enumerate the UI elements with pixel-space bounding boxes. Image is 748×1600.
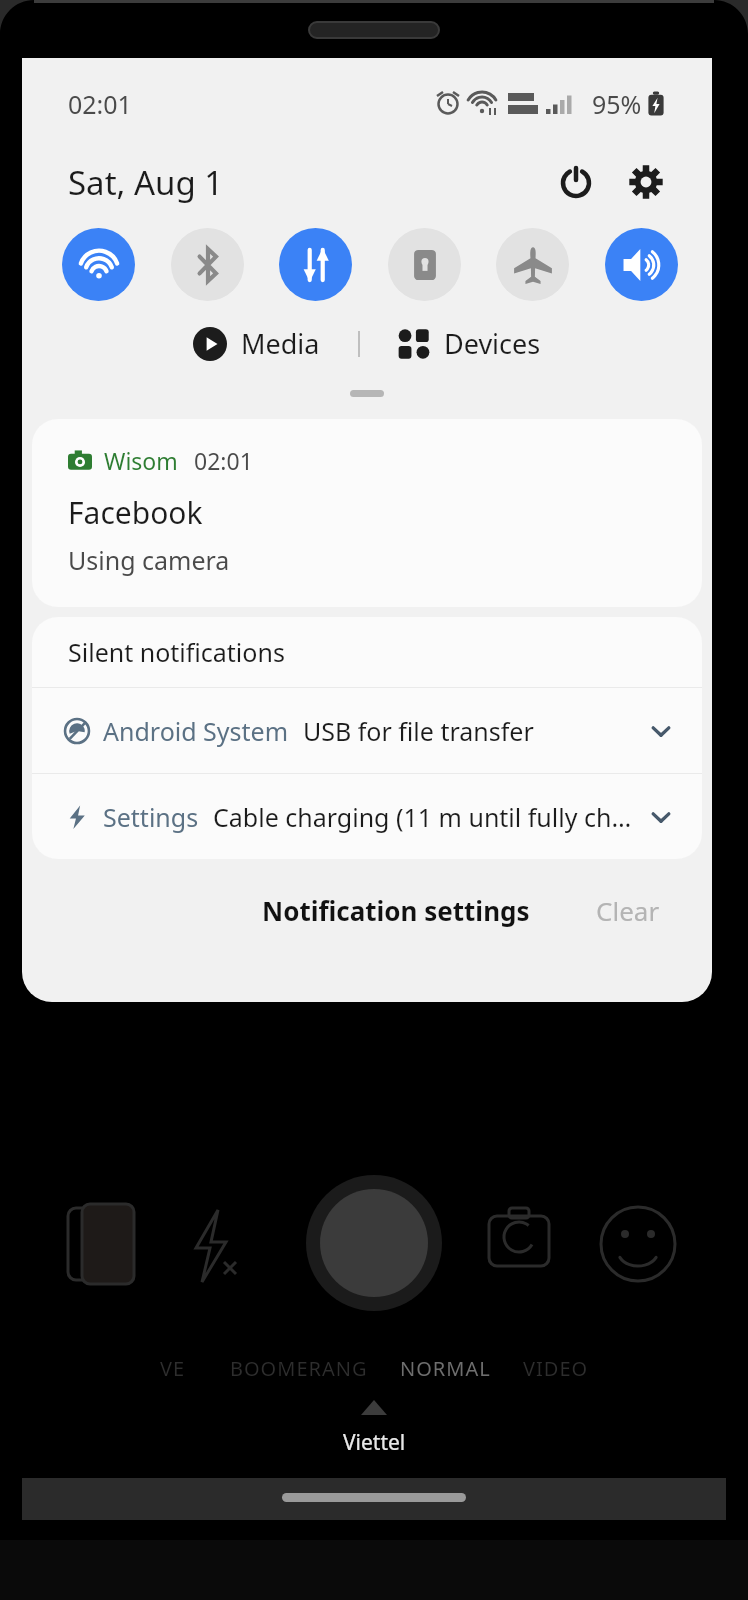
staticText: Using camera <box>68 543 230 577</box>
staticText: Viettel <box>343 1428 406 1457</box>
button[interactable]: BOOMERANG <box>228 1355 370 1382</box>
button[interactable]: SIM card lock <box>388 228 461 301</box>
button[interactable]: Android System <box>32 688 702 773</box>
staticText: Android System <box>103 714 289 748</box>
button[interactable]: Settings <box>32 774 702 859</box>
button[interactable]: Devices <box>388 319 551 368</box>
button[interactable]: VIDEO <box>521 1355 591 1382</box>
button[interactable]: VE <box>158 1355 188 1382</box>
staticText: 95% <box>592 87 642 121</box>
button[interactable]: Silent notifications <box>32 617 702 687</box>
staticText: Sat, Aug 1 <box>68 160 224 205</box>
staticText: BOOMERANG <box>230 1355 368 1382</box>
staticText: Devices <box>444 325 541 362</box>
staticText: 02:01 <box>68 87 132 121</box>
staticText: Facebook <box>68 492 203 533</box>
staticText: NORMAL <box>400 1355 491 1382</box>
button[interactable]: Media <box>183 319 330 368</box>
button[interactable]: Power <box>550 156 602 208</box>
staticText: Clear <box>596 893 660 928</box>
staticText: Silent notifications <box>68 635 285 669</box>
staticText: USB for file transfer <box>303 714 638 748</box>
button[interactable]: NORMAL <box>398 1355 493 1382</box>
button[interactable]: Airplane mode <box>496 228 569 301</box>
button[interactable]: Bluetooth <box>171 228 244 301</box>
staticText: Cable charging (11 m until fully char… <box>213 800 638 834</box>
button[interactable]: Wisom <box>32 419 702 607</box>
staticText: 02:01 <box>194 445 253 476</box>
button[interactable]: Sound <box>605 228 678 301</box>
staticText: Wisom <box>104 445 178 476</box>
staticText: Settings <box>103 800 199 834</box>
button[interactable]: Settings <box>620 156 672 208</box>
button[interactable]: Wi-Fi <box>62 228 135 301</box>
staticText: VE <box>160 1355 186 1382</box>
staticText: VIDEO <box>523 1355 589 1382</box>
button[interactable]: Clear <box>584 885 672 936</box>
staticText: Media <box>241 325 320 362</box>
button[interactable]: Notification settings <box>250 885 542 936</box>
staticText: Notification settings <box>262 893 530 928</box>
button[interactable] <box>350 390 384 397</box>
button[interactable]: Mobile data <box>279 228 352 301</box>
